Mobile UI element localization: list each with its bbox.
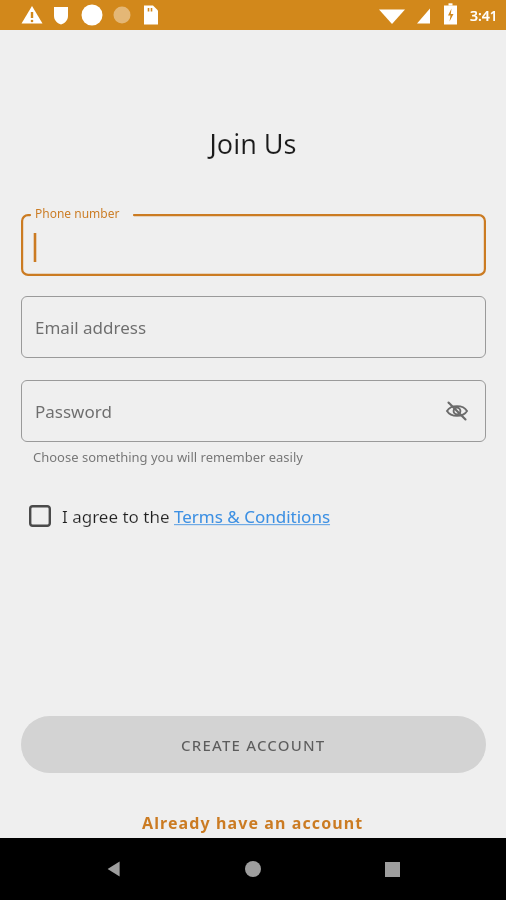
- button[interactable]: CREATE ACCOUNT: [21, 716, 486, 773]
- button[interactable]: Terms & Conditions: [174, 505, 331, 528]
- button[interactable]: [21, 214, 486, 276]
- button[interactable]: Password: [21, 380, 486, 442]
- staticText: Password: [35, 400, 112, 423]
- staticText: Phone number: [35, 205, 120, 221]
- button[interactable]: Toggle password visibility: [440, 394, 474, 428]
- staticText: Already have an account: [142, 812, 364, 834]
- button[interactable]: Home: [229, 845, 277, 893]
- staticText: Join Us: [0, 125, 506, 162]
- staticText: CREATE ACCOUNT: [181, 735, 326, 755]
- button[interactable]: Email address: [21, 296, 486, 358]
- staticText: 3:41: [470, 6, 498, 25]
- button[interactable]: Back: [90, 845, 138, 893]
- staticText: Email address: [35, 316, 147, 339]
- staticText: Choose something you will remember easil…: [33, 448, 303, 466]
- button[interactable]: Already have an account: [0, 802, 506, 844]
- staticText: I agree to the: [62, 505, 174, 528]
- button[interactable]: I agree to the: [21, 496, 343, 536]
- button[interactable]: Recent apps: [368, 845, 416, 893]
